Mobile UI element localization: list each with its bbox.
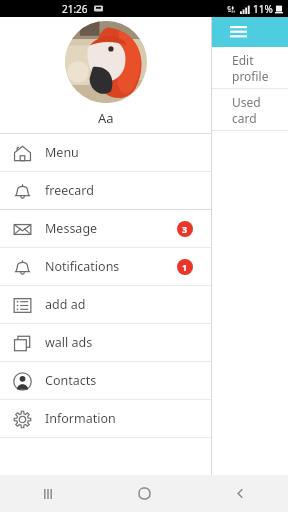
- staticText: Notifications: [45, 258, 120, 275]
- staticText: Used card: [232, 94, 288, 126]
- button[interactable]: Notifications: [0, 248, 212, 285]
- staticText: Message: [45, 220, 98, 237]
- staticText: 1: [182, 261, 188, 273]
- button[interactable]: freecard: [0, 172, 212, 209]
- staticText: 21:26: [62, 2, 88, 16]
- button[interactable]: Edit profile: [0, 47, 288, 88]
- staticText: add ad: [45, 296, 86, 313]
- button[interactable]: Message: [0, 210, 212, 247]
- staticText: wall ads: [45, 334, 93, 351]
- staticText: freecard: [45, 182, 94, 199]
- button[interactable]: Recent apps: [0, 475, 96, 512]
- staticText: Menu: [45, 144, 79, 161]
- button[interactable]: Used card: [0, 89, 288, 130]
- staticText: Contacts: [45, 372, 97, 389]
- staticText: Information: [45, 410, 116, 427]
- button[interactable]: Aa: [0, 17, 212, 133]
- button[interactable]: wall ads: [0, 324, 212, 361]
- button[interactable]: Contacts: [0, 362, 212, 399]
- staticText: Edit profile: [232, 52, 288, 84]
- button[interactable]: Open navigation drawer: [226, 20, 250, 44]
- button[interactable]: add ad: [0, 286, 212, 323]
- button[interactable]: Menu: [0, 134, 212, 171]
- staticText: Aa: [98, 109, 114, 127]
- button[interactable]: Home: [96, 475, 192, 512]
- staticText: 3: [182, 223, 188, 235]
- button[interactable]: Back: [192, 475, 288, 512]
- staticText: 11%: [253, 2, 273, 16]
- button[interactable]: Information: [0, 400, 212, 437]
